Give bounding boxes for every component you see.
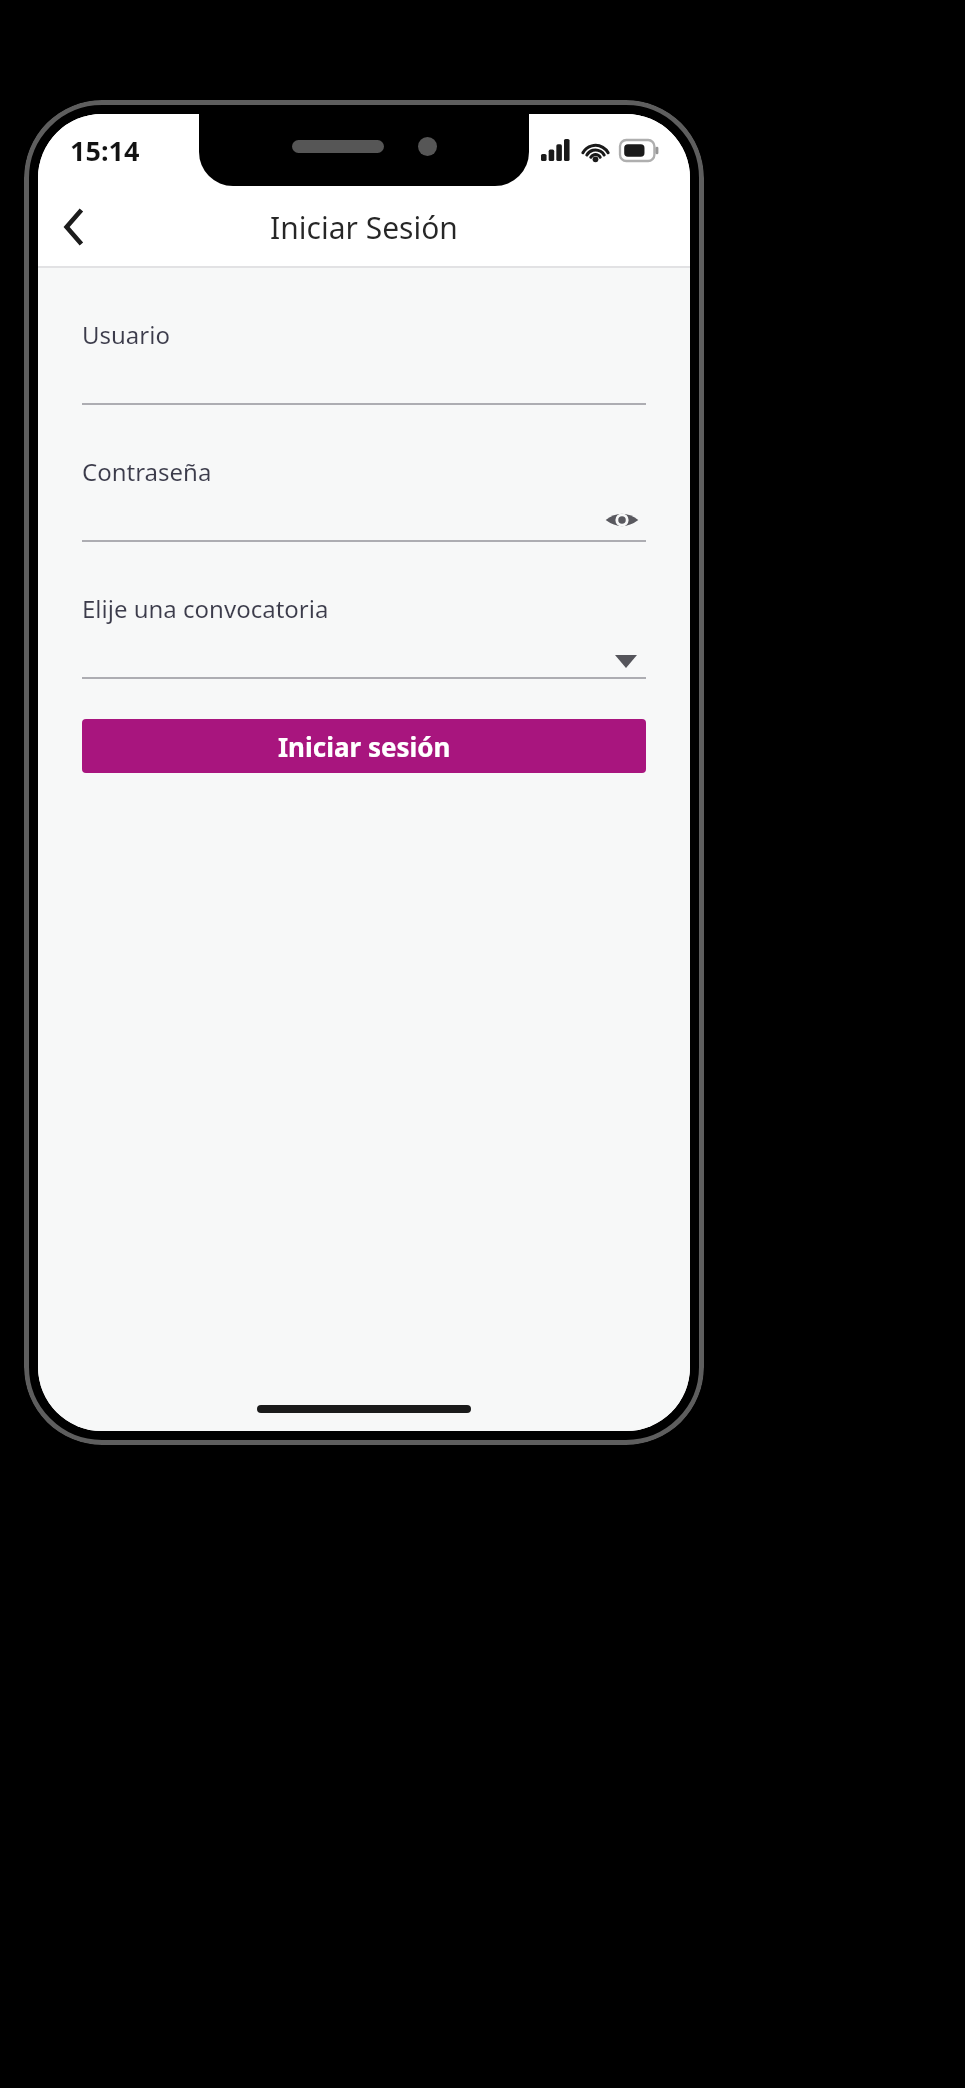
staticText: Elije una convocatoria xyxy=(82,592,329,625)
staticText: Iniciar sesión xyxy=(278,729,451,764)
other: Open dropdown xyxy=(606,641,646,681)
button[interactable]: Back xyxy=(46,198,104,256)
button[interactable]: Show password xyxy=(598,496,646,544)
staticText: Contraseña xyxy=(82,455,212,488)
button[interactable]: Iniciar sesión xyxy=(82,719,646,773)
button[interactable]: Open dropdown xyxy=(82,625,646,677)
staticText: Iniciar Sesión xyxy=(38,207,690,248)
staticText: Usuario xyxy=(82,318,170,351)
staticText: 15:14 xyxy=(70,132,140,169)
